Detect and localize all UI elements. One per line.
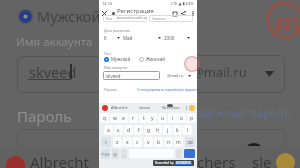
button[interactable]: b: [154, 137, 163, 147]
staticText: ☺: [113, 152, 118, 157]
button[interactable]: q: [100, 113, 109, 123]
button[interactable]: Bookmark: [170, 9, 179, 18]
button[interactable]: skveed: [103, 71, 160, 80]
button[interactable]: j: [163, 125, 172, 135]
staticText: 14:16: [102, 1, 113, 6]
button[interactable]: v: [144, 137, 153, 147]
staticText: Пароль: [104, 87, 117, 92]
staticText: .: [178, 152, 180, 157]
staticText: MOBIZEN: [176, 161, 191, 165]
button[interactable]: p: [187, 113, 196, 123]
button[interactable]: Enter: [184, 149, 195, 158]
button[interactable]: Share: [179, 9, 188, 18]
staticText: f: [138, 127, 140, 134]
staticText: Пароль: [17, 106, 72, 126]
button[interactable]: Сгенерировать надёжный пароль: [137, 87, 198, 92]
button[interactable]: i: [168, 113, 177, 123]
staticText: Дата рождения: [104, 28, 131, 33]
staticText: Имя: [106, 17, 113, 21]
button[interactable]: d: [124, 125, 133, 135]
staticText: p: [190, 115, 194, 122]
staticText: x: [126, 139, 129, 146]
staticText: j: [167, 127, 169, 134]
staticText: Skechers: [162, 105, 180, 111]
staticText: q: [103, 115, 107, 122]
staticText: l: [187, 127, 189, 134]
button[interactable]: n: [164, 137, 173, 147]
staticText: skveed: [29, 62, 77, 82]
button[interactable]: More options: [188, 9, 197, 18]
button[interactable]: l: [183, 125, 192, 135]
staticText: skeve: [139, 105, 151, 111]
staticText: sle: [252, 152, 272, 168]
staticText: v: [147, 139, 150, 146]
staticText: account.mail.ru: [117, 15, 147, 19]
button[interactable]: o: [177, 113, 186, 123]
button[interactable]: f: [134, 125, 143, 135]
button[interactable]: e: [119, 113, 128, 123]
staticText: адёжный пароль: [196, 105, 291, 121]
staticText: b: [157, 139, 161, 146]
staticText: ⇧: [104, 140, 108, 145]
staticText: t: [143, 115, 145, 122]
staticText: u: [161, 115, 165, 122]
button[interactable]: y: [148, 113, 157, 123]
button[interactable]: g: [144, 125, 153, 135]
staticText: ⌫: [187, 140, 193, 145]
button[interactable]: s: [114, 125, 123, 135]
staticText: m: [176, 139, 181, 146]
button[interactable]: 6: [104, 34, 120, 42]
button[interactable]: @mail.ru: [167, 73, 191, 78]
staticText: z: [116, 139, 119, 146]
staticText: Albrecht: [30, 152, 89, 168]
button[interactable]: Май: [123, 34, 161, 42]
button[interactable]: k: [173, 125, 182, 135]
staticText: @mail.ru: [167, 73, 184, 78]
staticText: Фамилия: [152, 17, 166, 21]
button[interactable]: x: [123, 137, 132, 147]
button[interactable]: t: [139, 113, 148, 123]
staticText: ?123: [101, 152, 110, 157]
button[interactable]: w: [110, 113, 119, 123]
staticText: Женский: [146, 56, 165, 62]
staticText: 02:1: [272, 21, 292, 35]
button[interactable]: r: [129, 113, 138, 123]
staticText: c: [136, 139, 139, 146]
staticText: d: [127, 127, 131, 134]
button[interactable]: Comma: [121, 149, 127, 159]
staticText: chers: [197, 152, 236, 168]
staticText: k: [176, 127, 179, 134]
staticText: o: [180, 115, 184, 122]
button[interactable]: m: [174, 137, 183, 147]
staticText: Регистрация: [117, 7, 154, 15]
staticText: @mail.ru: [192, 63, 247, 81]
staticText: Albrecht: [111, 105, 128, 111]
button[interactable]: h: [153, 125, 162, 135]
staticText: h: [156, 127, 160, 134]
button[interactable]: Close: [99, 8, 109, 18]
button[interactable]: z: [113, 137, 122, 147]
button[interactable]: Shift: [101, 137, 111, 147]
staticText: w: [113, 115, 117, 122]
button[interactable]: c: [133, 137, 142, 147]
staticText: r: [132, 115, 135, 122]
staticText: m: [275, 4, 300, 39]
staticText: Recorded by: [155, 161, 175, 165]
staticText: ,: [123, 152, 125, 157]
staticText: n: [167, 139, 171, 146]
button[interactable]: Backspace: [185, 137, 195, 147]
button[interactable]: Emoji: [112, 149, 119, 159]
staticText: LTE ▲ ▮ 64%: [171, 1, 194, 6]
button[interactable]: a: [104, 125, 113, 135]
staticText: a: [107, 127, 110, 134]
button[interactable]: Мужской: [104, 56, 131, 62]
button[interactable]: Symbols: [101, 149, 110, 159]
staticText: Май: [123, 35, 133, 41]
button[interactable]: 2000: [164, 34, 190, 42]
staticText: Мужской: [111, 56, 131, 62]
button[interactable]: u: [158, 113, 167, 123]
button[interactable]: Женский: [139, 56, 165, 62]
staticText: 2000: [164, 35, 175, 41]
button[interactable]: Period: [176, 149, 182, 159]
